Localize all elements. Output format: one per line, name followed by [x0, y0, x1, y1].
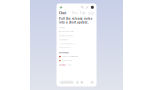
staticText: Retry: [68, 64, 72, 66]
button[interactable]: Search: [81, 6, 84, 9]
button[interactable]: Plan: [80, 11, 86, 15]
staticText: Claude Sonnet 4.5: [61, 81, 73, 83]
staticText: Logs: [88, 11, 94, 15]
button[interactable]: Chat: [59, 11, 66, 15]
staticText: Reading changelog: [59, 35, 73, 37]
button[interactable]: Account: [91, 6, 94, 9]
staticText: Key changes: [59, 52, 69, 53]
staticText: Model: claude: [59, 39, 68, 41]
button[interactable]: Files: [71, 11, 77, 15]
staticText: Faster sync, offline edits: [62, 56, 78, 57]
staticText: Plan: [80, 11, 86, 15]
button[interactable]: Continue: [59, 64, 66, 66]
staticText: Files: [71, 11, 77, 15]
button[interactable]: Dictate: [80, 81, 83, 84]
staticText: Three highlights this cycle: [59, 43, 76, 45]
staticText: Two fixes landed: [59, 47, 71, 48]
button[interactable]: Claude Sonnet 4.5: [59, 80, 74, 84]
staticText: Chat: [59, 11, 66, 15]
button[interactable]: New chat: [86, 6, 89, 9]
button[interactable]: Retry: [68, 64, 72, 66]
button[interactable]: Attach file: [76, 81, 79, 84]
button[interactable]: Send: [90, 80, 94, 84]
staticText: Continue: [59, 64, 66, 66]
button[interactable]: Home: [59, 5, 63, 9]
staticText: Searched 12 files: [61, 31, 74, 32]
button[interactable]: Logs: [88, 11, 94, 15]
staticText: New shortcuts: [62, 60, 72, 61]
staticText: Pull the release notes into a short upda…: [59, 17, 92, 24]
staticText: Thinking: [59, 27, 65, 28]
